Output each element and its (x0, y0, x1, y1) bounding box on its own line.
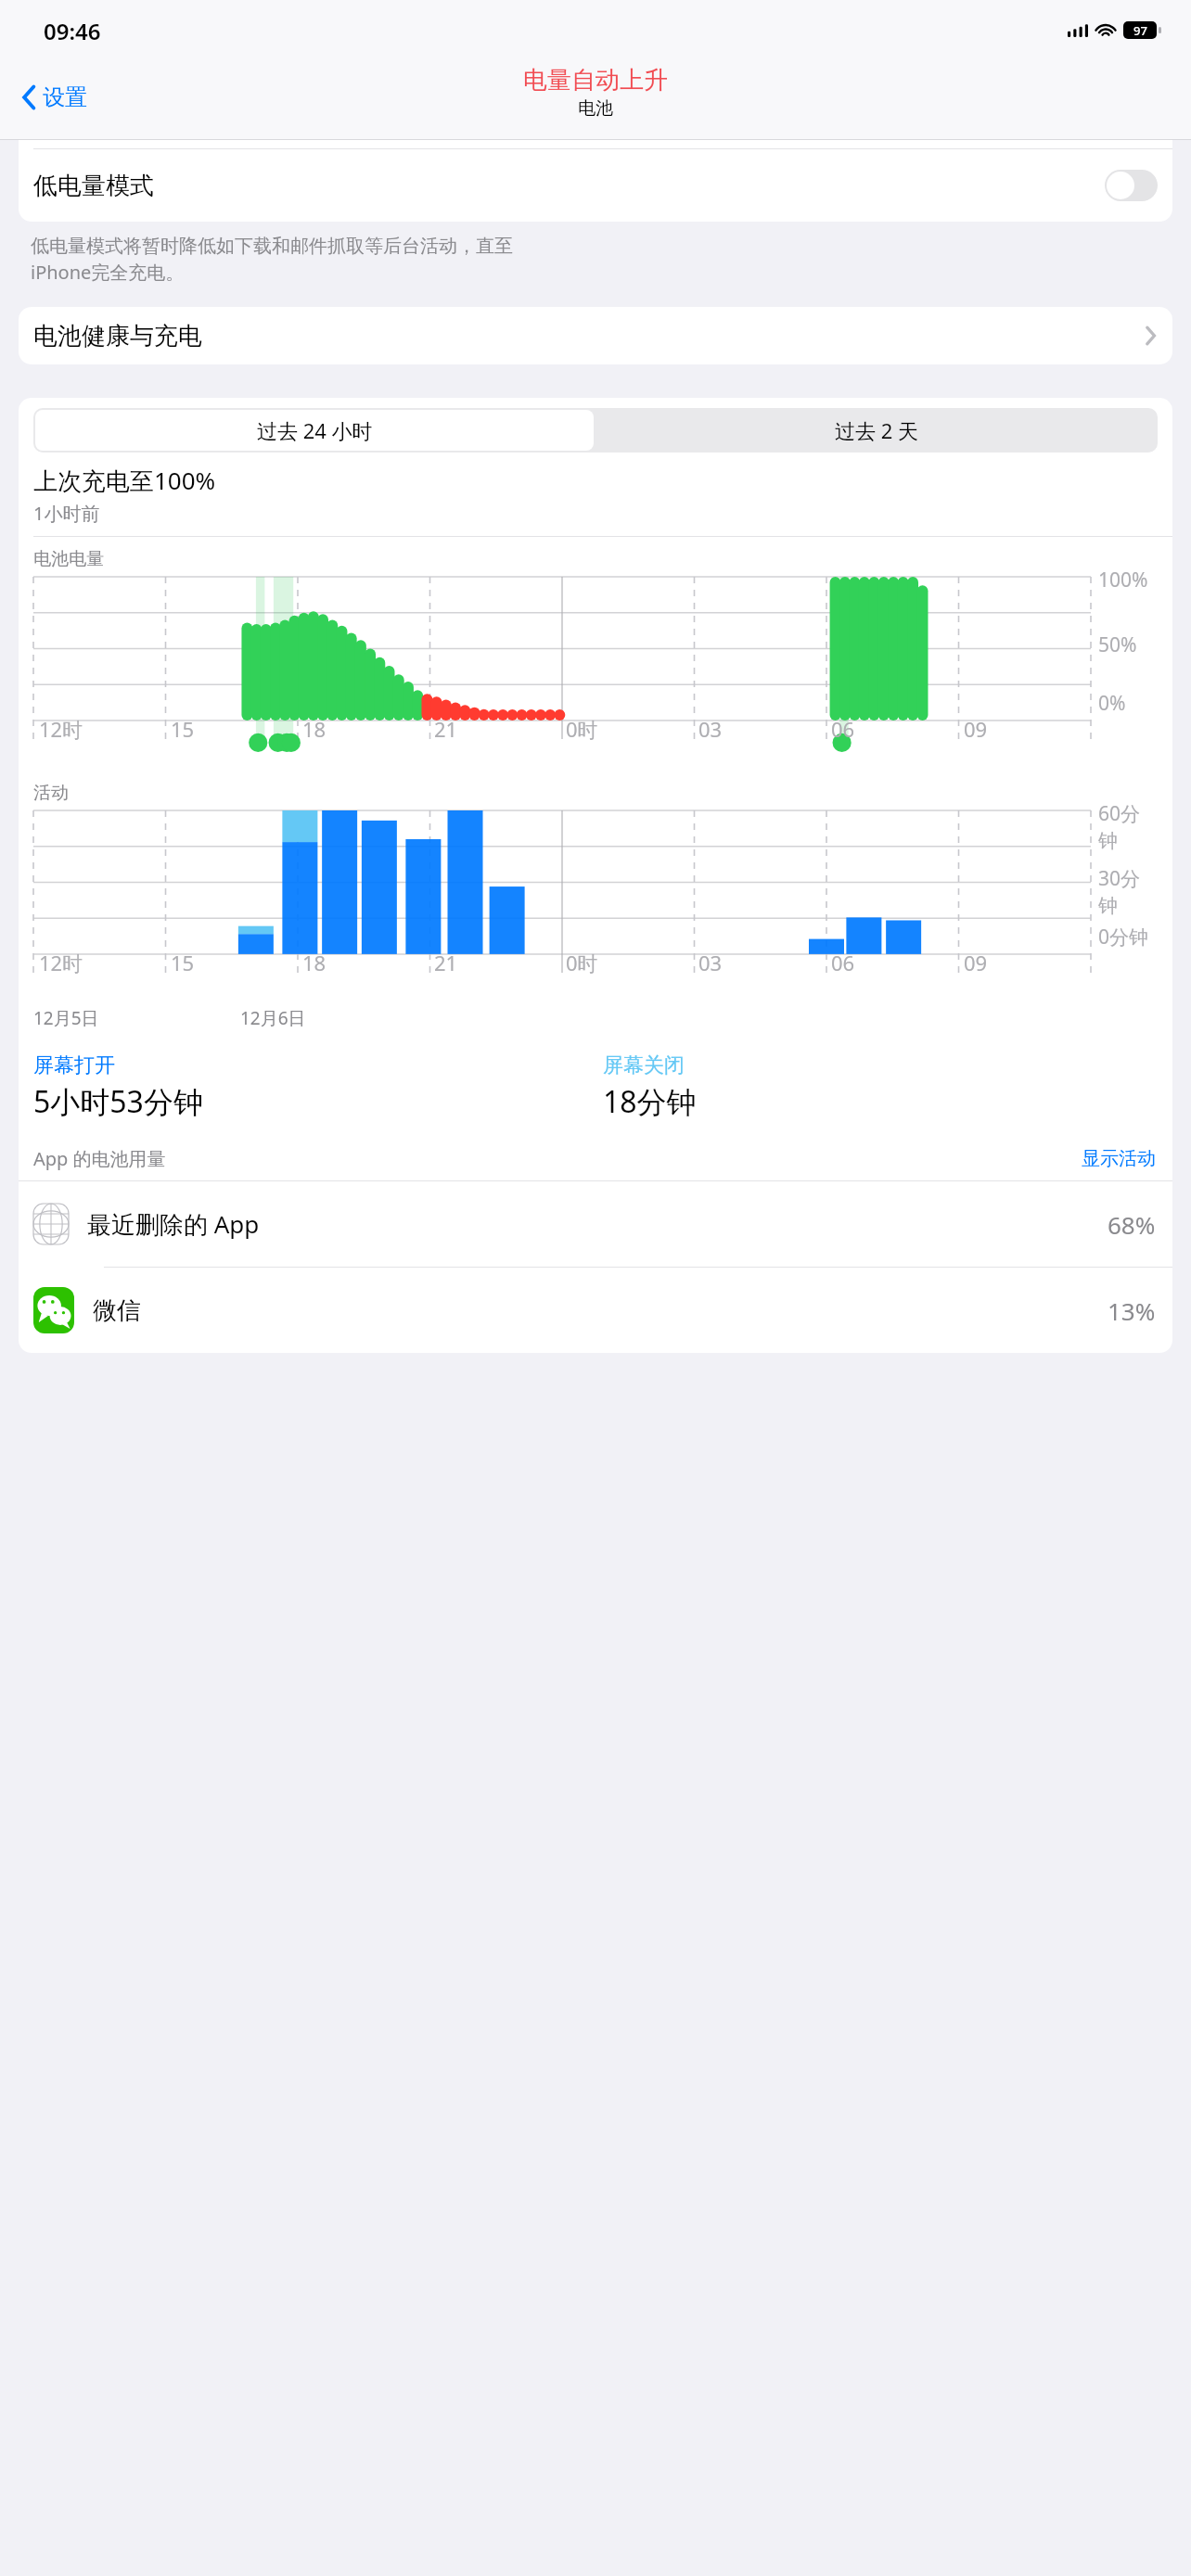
button[interactable]: 微信 (19, 1268, 1172, 1353)
staticText: 上次充电至100% (33, 464, 216, 497)
staticText: 18分钟 (603, 1081, 697, 1122)
staticText: 18 (302, 715, 327, 743)
staticText: 15 (171, 715, 195, 743)
staticText: 12时 (39, 715, 83, 743)
staticText: 电池电量 (33, 548, 104, 570)
staticText: 09 (964, 715, 988, 743)
staticText: 21 (434, 715, 458, 743)
button[interactable]: 过去 2 天 (595, 408, 1158, 453)
staticText: 屏幕关闭 (603, 1052, 685, 1078)
staticText: 60分钟 (1098, 800, 1159, 853)
button[interactable]: 低电量模式 (19, 149, 1172, 222)
staticText: 电量自动上升 (523, 65, 668, 96)
staticText: 过去 24 小时 (257, 416, 373, 444)
button[interactable]: 电池健康与充电 (19, 307, 1172, 364)
button[interactable]: 过去 24 小时 (35, 410, 594, 451)
staticText: 微信 (93, 1295, 141, 1326)
staticText: 06 (831, 715, 855, 743)
staticText: 低电量模式将暂时降低如下载和邮件抓取等后台活动，直至 iPhone完全充电。 (31, 235, 513, 285)
staticText: 过去 2 天 (835, 416, 919, 444)
staticText: 活动 (33, 782, 69, 804)
staticText: 0时 (566, 949, 598, 976)
staticText: 0% (1098, 690, 1126, 717)
staticText: 50% (1098, 631, 1137, 658)
staticText: 12月6日 (240, 1006, 306, 1030)
staticText: 12时 (39, 949, 83, 976)
button[interactable]: 最近删除的 App (19, 1181, 1172, 1267)
staticText: 5小时53分钟 (33, 1081, 203, 1122)
button[interactable]: 设置 (15, 78, 95, 117)
staticText: 1小时前 (33, 501, 100, 526)
staticText: 0分钟 (1098, 924, 1149, 950)
staticText: 15 (171, 949, 195, 976)
staticText: 低电量模式 (33, 171, 154, 201)
staticText: 21 (434, 949, 458, 976)
staticText: 显示活动 (1082, 1147, 1156, 1170)
staticText: App 的电池用量 (33, 1146, 166, 1171)
staticText: 最近删除的 App (87, 1207, 260, 1241)
staticText: 06 (831, 949, 855, 976)
staticText: 03 (698, 715, 723, 743)
staticText: 100% (1098, 567, 1148, 593)
staticText: 68% (1108, 1208, 1156, 1241)
button[interactable]: 低电量模式开关 (1105, 170, 1158, 201)
staticText: 09:46 (44, 16, 101, 46)
staticText: 18 (302, 949, 327, 976)
staticText: 电池健康与充电 (33, 321, 202, 351)
staticText: 09 (964, 949, 988, 976)
staticText: 30分钟 (1098, 865, 1159, 918)
staticText: 12月5日 (33, 1006, 99, 1030)
staticText: 屏幕打开 (33, 1052, 115, 1078)
button[interactable]: 显示活动 (1082, 1147, 1156, 1170)
staticText: 97 (1133, 22, 1147, 39)
staticText: 设置 (43, 83, 87, 111)
staticText: 13% (1108, 1294, 1156, 1327)
staticText: 0时 (566, 715, 598, 743)
staticText: 电池 (578, 97, 613, 120)
staticText: 03 (698, 949, 723, 976)
